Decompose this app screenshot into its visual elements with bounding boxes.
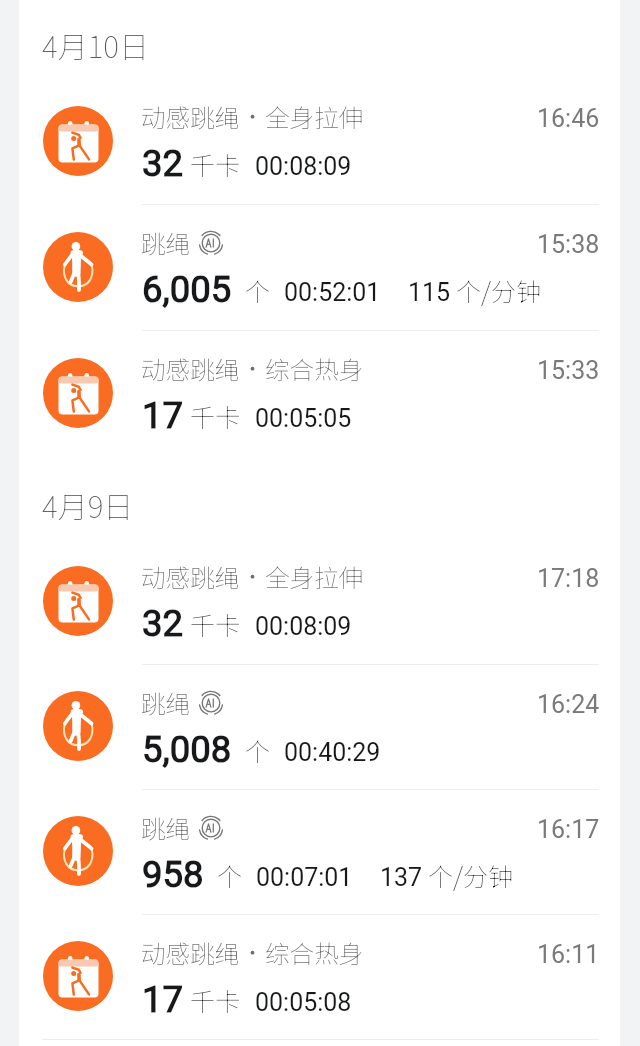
staticText: 00:08:09 [255, 612, 352, 641]
staticText: 00:05:05 [255, 404, 352, 433]
staticText: 137 [380, 863, 423, 892]
staticText: 5,008 [142, 728, 232, 771]
staticText: 32 [142, 142, 184, 185]
other: 动感跳绳 [43, 566, 113, 636]
staticText: 00:08:09 [255, 152, 352, 181]
staticText: 全身拉伸 [265, 98, 364, 134]
other: 动感跳绳 [43, 106, 113, 176]
other: 跳绳 [43, 816, 113, 886]
staticText: 17 [142, 978, 184, 1021]
staticText: 千卡 [190, 982, 241, 1018]
other: 动感跳绳 [43, 358, 113, 428]
staticText: 千卡 [190, 146, 241, 182]
button[interactable]: 动感跳绳 [19, 914, 620, 1039]
staticText: 千卡 [190, 398, 241, 434]
staticText: 全身拉伸 [265, 558, 364, 594]
other: 跳绳 [43, 691, 113, 761]
staticText: 综合热身 [265, 350, 364, 386]
staticText: 动感跳绳 [141, 98, 240, 134]
staticText: 00:05:08 [255, 988, 352, 1017]
staticText: 17 [142, 394, 184, 437]
button[interactable]: 跳绳 [19, 664, 620, 789]
staticText: 个 [217, 857, 243, 893]
button[interactable]: 动感跳绳 [19, 78, 620, 204]
staticText: 16:11 [537, 940, 600, 969]
staticText: 动感跳绳 [141, 350, 240, 386]
staticText: 个 [245, 272, 271, 308]
staticText: 15:33 [537, 356, 600, 385]
staticText: 6,005 [142, 268, 232, 311]
staticText: 跳绳 [141, 224, 191, 260]
staticText: 千卡 [190, 606, 241, 642]
staticText: 动感跳绳 [141, 934, 240, 970]
staticText: 958 [142, 853, 204, 896]
staticText: 32 [142, 602, 184, 645]
other: 动感跳绳 [43, 941, 113, 1011]
staticText: 00:07:01 [256, 863, 353, 892]
staticText: 跳绳 [141, 809, 191, 845]
staticText: 16:17 [537, 815, 600, 844]
staticText: 15:38 [537, 230, 600, 259]
staticText: 个/分钟 [428, 857, 513, 893]
button[interactable]: 动感跳绳 [19, 538, 620, 664]
button[interactable]: 跳绳 [19, 204, 620, 330]
staticText: 4月9日 [42, 483, 134, 526]
staticText: 16:46 [537, 104, 600, 133]
staticText: 00:52:01 [284, 278, 381, 307]
staticText: 个/分钟 [456, 272, 541, 308]
staticText: 综合热身 [265, 934, 364, 970]
staticText: 个 [245, 732, 271, 768]
staticText: 跳绳 [141, 684, 191, 720]
staticText: 115 [408, 278, 451, 307]
button[interactable]: 跳绳 [19, 789, 620, 914]
staticText: 16:24 [537, 690, 600, 719]
staticText: 00:40:29 [284, 738, 381, 767]
button[interactable]: 动感跳绳 [19, 330, 620, 456]
other: 跳绳 [43, 232, 113, 302]
staticText: 动感跳绳 [141, 558, 240, 594]
staticText: 17:18 [537, 564, 600, 593]
staticText: 4月10日 [42, 23, 149, 66]
